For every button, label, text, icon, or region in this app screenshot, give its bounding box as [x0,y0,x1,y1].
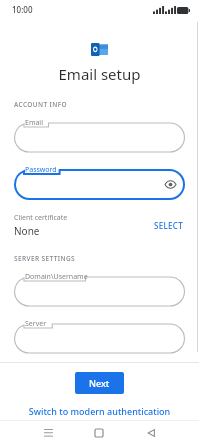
button[interactable]: Client certificate [0,211,199,240]
button[interactable]: Domain\Username [14,272,185,306]
button[interactable]: Next [75,372,124,394]
staticText: Client certificate [14,213,68,223]
staticText: Email setup [0,64,199,84]
button[interactable]: SELECT [150,216,187,235]
staticText: Email [25,118,43,128]
button[interactable]: Recent apps [38,423,58,443]
button[interactable]: Password [14,165,185,199]
staticText: 10:00 [12,4,33,15]
staticText: Domain\Username [25,272,88,282]
button[interactable]: Back [141,423,161,443]
staticText: Server [25,319,47,329]
button[interactable]: Email [14,118,185,152]
button[interactable]: Server [14,319,185,353]
button[interactable]: Show password [163,177,177,191]
staticText: ACCOUNT INFO [14,100,68,109]
button[interactable]: Home [89,423,109,443]
staticText: SERVER SETTINGS [14,254,75,263]
staticText: Next [89,377,110,389]
button[interactable]: Switch to modern authentication [0,403,199,419]
staticText: None [14,224,40,238]
staticText: Password [25,165,57,175]
